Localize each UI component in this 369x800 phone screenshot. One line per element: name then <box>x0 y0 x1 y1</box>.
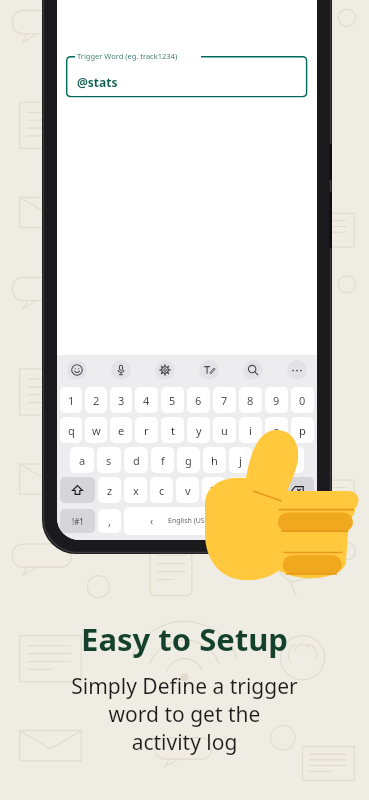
staticText: 4 <box>143 393 150 408</box>
staticText: Trigger Word (eg. track1234) <box>77 51 178 61</box>
button[interactable]: c <box>150 477 173 503</box>
staticText: Simply Define a trigger word to get the … <box>71 672 298 756</box>
button[interactable]: r <box>135 417 158 443</box>
staticText: s <box>106 453 112 468</box>
button[interactable]: o <box>265 417 288 443</box>
button[interactable]: , <box>98 509 121 533</box>
button[interactable]: q <box>60 417 82 443</box>
staticText: g <box>185 453 192 468</box>
staticText: e <box>118 423 125 438</box>
button[interactable]: h <box>203 447 226 473</box>
staticText: o <box>273 423 280 438</box>
button[interactable]: Settings <box>155 360 175 380</box>
button[interactable]: z <box>98 477 121 503</box>
staticText: ‹ <box>150 514 154 528</box>
staticText: y <box>196 423 202 438</box>
staticText: v <box>185 483 191 498</box>
button[interactable]: f <box>151 447 174 473</box>
staticText: u <box>221 423 228 438</box>
staticText: z <box>107 483 113 498</box>
staticText: 3 <box>118 393 125 408</box>
button[interactable]: !#1 <box>60 509 95 533</box>
button[interactable]: i <box>239 417 262 443</box>
staticText: 8 <box>247 393 254 408</box>
button[interactable]: 5 <box>161 387 184 413</box>
staticText: c <box>159 483 165 498</box>
button[interactable]: Trigger Word (eg. track1234) <box>66 56 308 98</box>
button[interactable]: t <box>161 417 184 443</box>
button[interactable]: g <box>177 447 200 473</box>
staticText: !#1 <box>72 516 84 527</box>
staticText: j <box>239 453 242 468</box>
staticText: 9 <box>273 393 280 408</box>
staticText: w <box>92 423 101 438</box>
button[interactable]: j <box>229 447 252 473</box>
button[interactable]: a <box>70 447 94 473</box>
button[interactable]: m <box>254 477 277 503</box>
staticText: q <box>68 423 75 438</box>
button[interactable]: y <box>187 417 210 443</box>
button[interactable]: e <box>110 417 132 443</box>
button[interactable]: d <box>124 447 148 473</box>
button[interactable]: Shift <box>60 477 95 503</box>
staticText: 0 <box>299 393 306 408</box>
staticText: b <box>210 483 217 498</box>
staticText: h <box>211 453 218 468</box>
button[interactable]: s <box>97 447 121 473</box>
button[interactable]: w <box>85 417 107 443</box>
button[interactable]: 7 <box>213 387 236 413</box>
button[interactable]: Voice input <box>111 360 131 380</box>
staticText: r <box>144 423 149 438</box>
button[interactable]: 4 <box>135 387 158 413</box>
staticText: , <box>108 514 111 529</box>
button[interactable]: ‹ <box>124 507 250 535</box>
button[interactable]: Backspace <box>280 477 314 503</box>
button[interactable]: p <box>291 417 314 443</box>
button[interactable]: l <box>281 447 304 473</box>
staticText: x <box>133 483 139 498</box>
button[interactable]: x <box>124 477 147 503</box>
staticText: t <box>171 423 175 438</box>
button[interactable]: Enter <box>279 509 314 533</box>
staticText: 7 <box>221 393 228 408</box>
staticText: @stats <box>77 74 118 90</box>
button[interactable]: u <box>213 417 236 443</box>
staticText: 2 <box>93 393 100 408</box>
staticText: Easy to Setup <box>81 618 288 660</box>
staticText: English (US) <box>168 516 207 526</box>
button[interactable]: Search <box>243 360 263 380</box>
staticText: p <box>299 423 306 438</box>
staticText: f <box>161 453 165 468</box>
staticText: 1 <box>68 393 75 408</box>
button[interactable]: More options <box>287 360 307 380</box>
staticText: m <box>260 483 271 498</box>
button[interactable]: Emoji <box>67 360 87 380</box>
staticText: d <box>133 453 140 468</box>
button[interactable]: b <box>202 477 225 503</box>
staticText: a <box>79 453 86 468</box>
button[interactable]: Handwriting <box>199 360 219 380</box>
button[interactable]: 2 <box>85 387 107 413</box>
button[interactable]: 1 <box>60 387 82 413</box>
button[interactable]: 3 <box>110 387 132 413</box>
button[interactable]: n <box>228 477 251 503</box>
staticText: 5 <box>169 393 176 408</box>
button[interactable]: 6 <box>187 387 210 413</box>
button[interactable]: 0 <box>291 387 314 413</box>
button[interactable]: 8 <box>239 387 262 413</box>
button[interactable]: 9 <box>265 387 288 413</box>
staticText: 6 <box>195 393 202 408</box>
button[interactable]: v <box>176 477 199 503</box>
staticText: i <box>249 423 252 438</box>
